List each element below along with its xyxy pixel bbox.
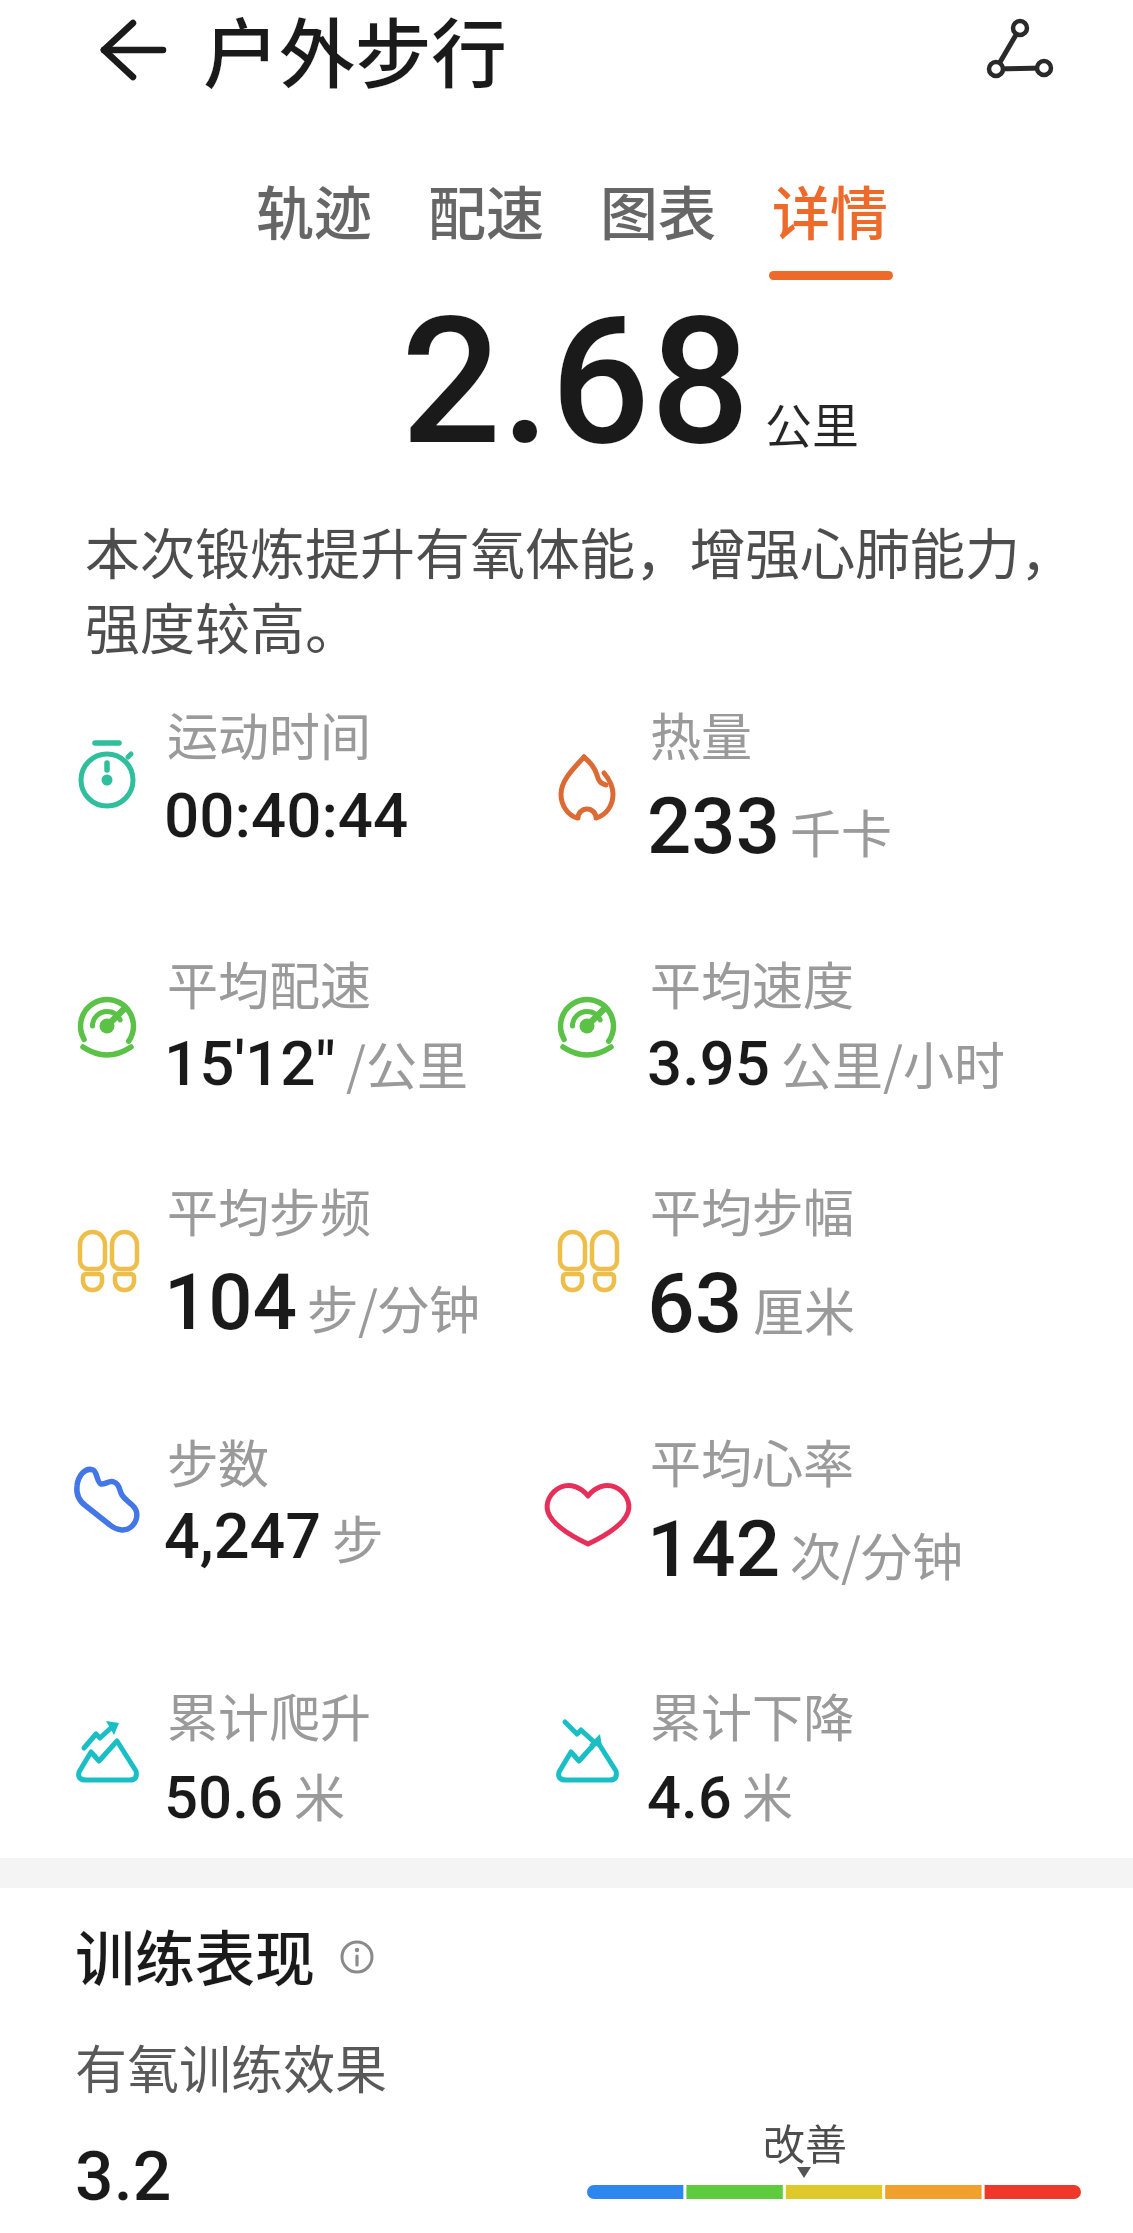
staticText: 4,247	[164, 1500, 322, 1574]
staticText: 运动时间	[167, 697, 372, 771]
staticText: 平均步频	[167, 1173, 372, 1247]
staticText: 142	[647, 1504, 780, 1595]
button[interactable]	[90, 22, 170, 84]
staticText: 改善	[763, 2111, 848, 2172]
button[interactable]	[338, 1938, 378, 1978]
staticText: 配速	[428, 168, 545, 252]
staticText: 3.95	[647, 1027, 771, 1100]
staticText: 热量	[650, 697, 753, 771]
staticText: 累计爬升	[167, 1678, 372, 1752]
staticText: 步	[332, 1500, 384, 1574]
staticText: 公里	[765, 388, 859, 456]
staticText: 4.6	[647, 1762, 732, 1832]
staticText: 详情	[772, 168, 889, 252]
staticText: 公里/小时	[781, 1026, 1005, 1100]
staticText: 50.6	[164, 1762, 284, 1832]
staticText: 步数	[167, 1424, 270, 1498]
staticText: 平均配速	[167, 946, 372, 1020]
button[interactable]	[762, 165, 900, 255]
staticText: 3.2	[75, 2137, 172, 2217]
button[interactable]	[590, 165, 728, 255]
staticText: 00:40:44	[164, 779, 409, 852]
staticText: 户外步行	[203, 0, 507, 104]
staticText: 2.68	[401, 279, 751, 485]
staticText: 米	[294, 1758, 346, 1832]
staticText: 累计下降	[650, 1678, 855, 1752]
staticText: 次/分钟	[790, 1517, 963, 1591]
staticText: 图表	[600, 168, 717, 252]
staticText: 厘米	[753, 1272, 856, 1346]
staticText: 平均心率	[650, 1424, 855, 1498]
staticText: 平均速度	[650, 946, 855, 1020]
staticText: 63	[647, 1254, 743, 1352]
button[interactable]	[418, 165, 556, 255]
staticText: 轨迹	[256, 168, 373, 252]
staticText: 训练表现	[75, 1911, 315, 1998]
staticText: 强度较高。	[85, 585, 361, 665]
staticText: 本次锻炼提升有氧体能，增强心肺能力，	[85, 510, 1076, 590]
staticText: 千卡	[790, 794, 893, 868]
staticText: 步/分钟	[307, 1270, 480, 1344]
staticText: 有氧训练效果	[75, 2029, 388, 2104]
staticText: 15'12"	[164, 1027, 336, 1100]
button[interactable]	[980, 18, 1060, 84]
staticText: /公里	[346, 1026, 468, 1100]
staticText: 233	[647, 781, 780, 872]
staticText: 104	[164, 1257, 297, 1348]
staticText: 平均步幅	[650, 1173, 855, 1247]
staticText: 米	[742, 1758, 794, 1832]
button[interactable]	[246, 165, 384, 255]
